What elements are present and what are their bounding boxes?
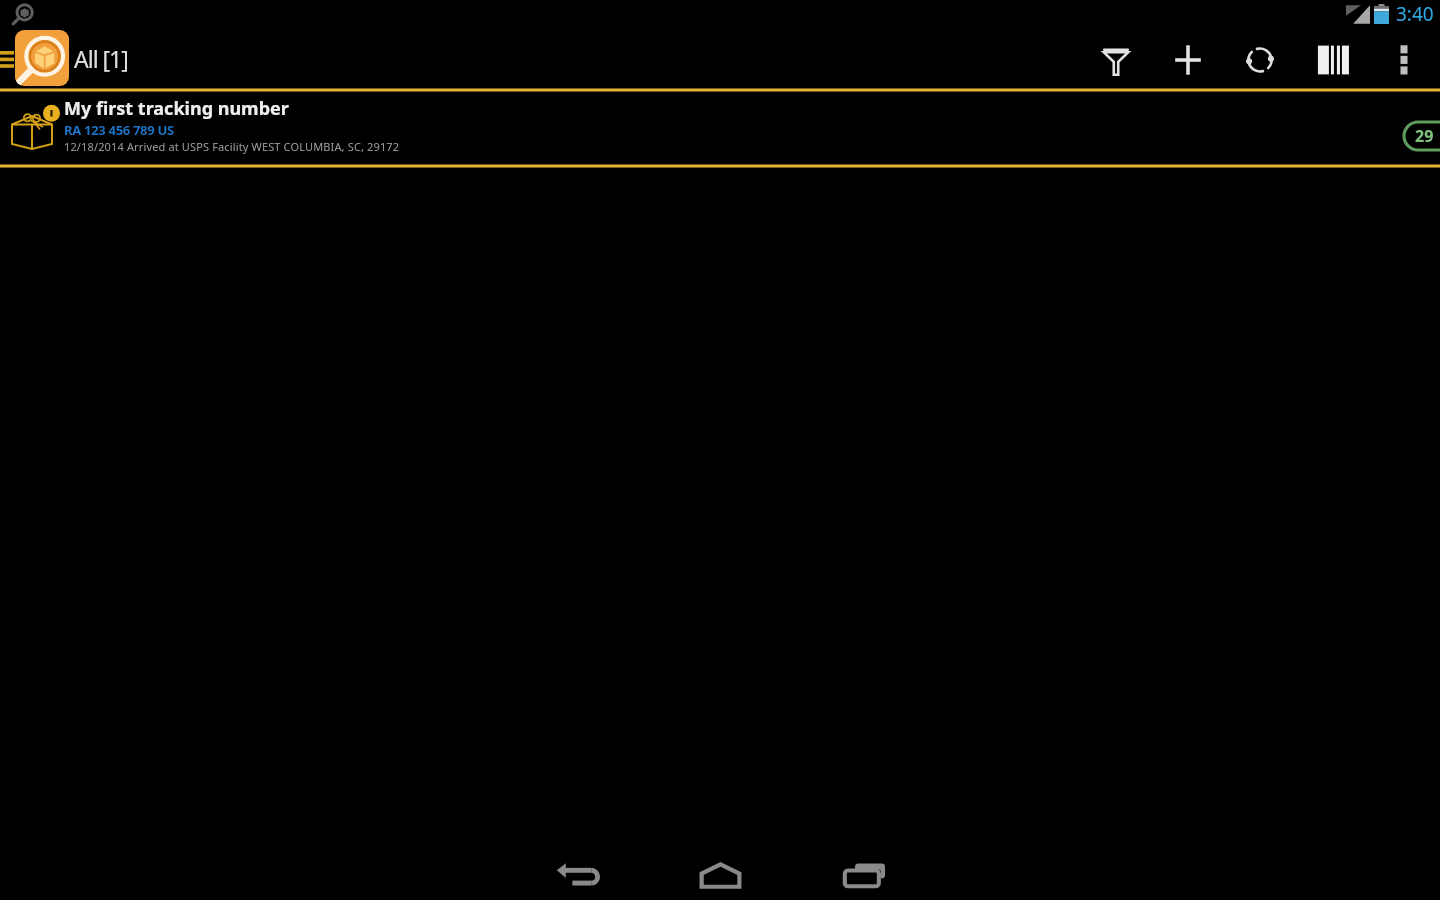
button[interactable]: Refresh <box>1224 27 1296 88</box>
button[interactable]: All [1] <box>0 30 128 86</box>
button[interactable]: Home <box>683 850 757 900</box>
button[interactable]: Recents <box>827 850 901 900</box>
staticText: 3:40 <box>1396 1 1434 27</box>
staticText: All [1] <box>74 43 128 74</box>
staticText: 12/18/2014 Arrived at USPS Facility WEST… <box>64 139 400 154</box>
button[interactable]: Back <box>539 850 613 900</box>
staticText: 29 <box>1415 125 1434 147</box>
button[interactable]: Scan barcode <box>1296 27 1368 88</box>
button[interactable]: More options <box>1368 27 1440 88</box>
staticText: My first tracking number <box>64 96 289 121</box>
button[interactable]: Filter <box>1080 27 1152 88</box>
button[interactable]: 29 <box>1404 122 1440 150</box>
button[interactable]: My first tracking number <box>0 92 1440 164</box>
staticText: RA 123 456 789 US <box>64 121 174 139</box>
button[interactable]: Add <box>1152 27 1224 88</box>
